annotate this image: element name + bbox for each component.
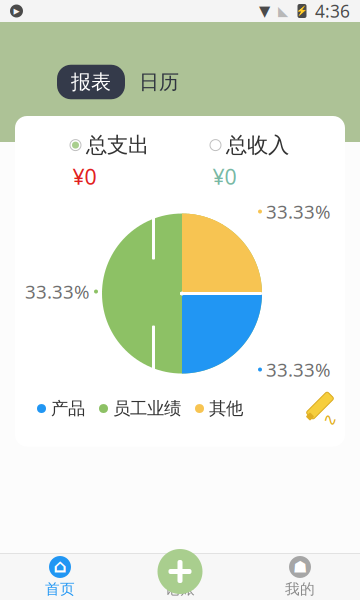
staticText: 33.33% [25,279,90,304]
button[interactable]: ⌂ [0,554,120,600]
staticText: ☗ [293,558,307,576]
staticText: 总收入 [226,132,289,158]
button[interactable]: 日历 [135,65,183,99]
staticText: ∿ [323,410,338,429]
staticText: 我的 [285,580,315,598]
staticText: 报表 [71,70,111,94]
staticText: 总支出 [86,132,149,158]
staticText: ⌂ [53,555,66,577]
staticText: 33.33% [266,357,331,382]
button[interactable]: 总收入 [210,132,289,190]
button[interactable]: 编辑 [301,388,337,428]
button[interactable]: 总支出 [70,132,149,190]
button[interactable]: 报表 [57,65,125,99]
staticText: ¥0 [72,162,96,190]
staticText: 产品 [51,398,85,419]
button[interactable]: 记账 [157,549,202,594]
staticText: 33.33% [266,199,331,224]
staticText: 记账 [165,580,195,598]
staticText: ▶ [13,6,19,16]
staticText: 日历 [139,70,179,94]
staticText: 其他 [209,398,243,419]
staticText: ¥0 [212,162,236,190]
button[interactable]: ☗ [240,554,360,600]
button[interactable]: 记账 [120,554,240,600]
staticText: ▼ [259,3,270,19]
staticText: ◣ [278,3,288,18]
staticText: 员工业绩 [113,398,181,419]
staticText: 4:36 [315,0,350,22]
staticText: ⚡ [296,6,308,16]
staticText: 首页 [45,580,75,598]
